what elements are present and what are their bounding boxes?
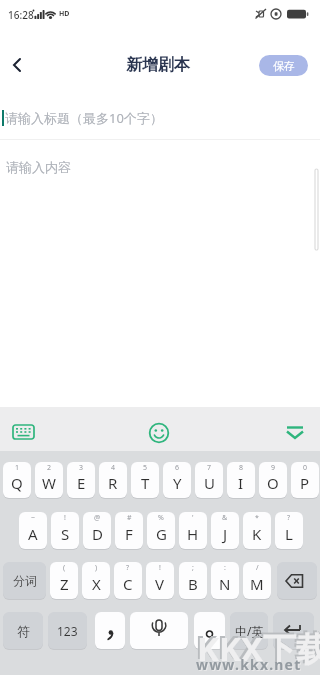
staticText: 0 bbox=[303, 463, 308, 473]
button[interactable]: # bbox=[115, 512, 143, 549]
button[interactable] bbox=[146, 420, 173, 446]
button[interactable] bbox=[4, 52, 30, 78]
staticText: S bbox=[302, 404, 319, 445]
button[interactable]: 7 bbox=[195, 462, 223, 498]
staticText: S bbox=[303, 405, 320, 446]
staticText: / bbox=[256, 563, 259, 573]
button[interactable]: 123 bbox=[48, 612, 87, 649]
button[interactable]: / bbox=[243, 562, 271, 599]
staticText: ) bbox=[95, 563, 98, 573]
staticText: H bbox=[187, 524, 199, 544]
button[interactable] bbox=[277, 562, 317, 599]
button[interactable] bbox=[95, 612, 125, 649]
button[interactable]: 中/英 bbox=[230, 612, 268, 649]
button[interactable]: 4 bbox=[99, 462, 127, 498]
staticText: 分词 bbox=[13, 573, 37, 588]
staticText: U bbox=[204, 473, 215, 493]
staticText: 9 bbox=[271, 463, 276, 473]
staticText: www.kkx.net bbox=[196, 655, 302, 674]
staticText: 2 bbox=[47, 463, 52, 473]
staticText: ~ bbox=[31, 513, 36, 523]
staticText: A bbox=[28, 524, 38, 544]
staticText: ? bbox=[287, 513, 291, 523]
staticText: # bbox=[127, 513, 132, 523]
staticText: 请输入内容 bbox=[6, 159, 71, 175]
button[interactable]: 0 bbox=[291, 462, 319, 498]
button[interactable] bbox=[273, 612, 314, 649]
staticText: B bbox=[188, 574, 198, 594]
staticText: * bbox=[255, 513, 259, 523]
staticText: 16:28 bbox=[8, 8, 34, 22]
staticText: 中/英 bbox=[235, 623, 264, 639]
button[interactable]: 8 bbox=[227, 462, 255, 498]
button[interactable] bbox=[194, 612, 225, 649]
staticText: & bbox=[222, 513, 228, 523]
staticText: ; bbox=[192, 563, 194, 573]
button[interactable]: ~ bbox=[19, 512, 47, 549]
staticText: C bbox=[123, 574, 133, 594]
button[interactable]: ' bbox=[179, 512, 207, 549]
button[interactable]: 6 bbox=[163, 462, 191, 498]
button[interactable]: ? bbox=[275, 512, 303, 549]
button[interactable]: 3 bbox=[67, 462, 95, 498]
staticText: 1 bbox=[15, 463, 20, 473]
button[interactable]: 1 bbox=[3, 462, 31, 498]
staticText: W bbox=[42, 473, 56, 493]
button[interactable] bbox=[130, 612, 188, 649]
staticText: Q bbox=[11, 473, 23, 493]
staticText: ' bbox=[192, 513, 194, 523]
staticText: ( bbox=[63, 563, 66, 573]
staticText: V bbox=[155, 574, 165, 594]
staticText: 4 bbox=[111, 463, 116, 473]
staticText: M bbox=[250, 574, 264, 594]
staticText: 7 bbox=[207, 463, 212, 473]
staticText: D bbox=[92, 524, 103, 544]
button[interactable]: 分词 bbox=[3, 562, 46, 599]
button[interactable]: 符 bbox=[3, 612, 43, 649]
staticText: 8 bbox=[239, 463, 244, 473]
staticText: 请输入标题（最多10个字） bbox=[5, 109, 163, 127]
button[interactable]: ! bbox=[51, 512, 79, 549]
staticText: G bbox=[156, 524, 167, 544]
staticText: KKX下载 bbox=[195, 624, 320, 669]
staticText: K bbox=[252, 524, 262, 544]
staticText: J bbox=[223, 524, 228, 544]
staticText: 3 bbox=[79, 463, 84, 473]
staticText: 新增剧本 bbox=[126, 55, 190, 75]
button[interactable]: * bbox=[243, 512, 271, 549]
staticText: X bbox=[92, 574, 101, 594]
staticText: N bbox=[219, 574, 231, 594]
staticText: % bbox=[158, 513, 164, 523]
button[interactable] bbox=[8, 420, 40, 446]
button[interactable]: ? bbox=[114, 562, 142, 599]
staticText: 5 bbox=[143, 463, 148, 473]
staticText: O bbox=[267, 473, 279, 493]
staticText: E bbox=[77, 473, 86, 493]
staticText: P bbox=[300, 473, 310, 493]
staticText: Z bbox=[60, 574, 69, 594]
staticText: : bbox=[224, 563, 226, 573]
button[interactable]: 保存 bbox=[259, 55, 308, 76]
button[interactable]: @ bbox=[83, 512, 111, 549]
button[interactable]: 9 bbox=[259, 462, 287, 498]
button[interactable]: ( bbox=[50, 562, 78, 599]
button[interactable]: 5 bbox=[131, 462, 159, 498]
button[interactable]: & bbox=[211, 512, 239, 549]
staticText: ! bbox=[159, 563, 161, 573]
staticText: S bbox=[61, 524, 70, 544]
button[interactable]: ! bbox=[146, 562, 174, 599]
staticText: ? bbox=[126, 563, 130, 573]
staticText: 123 bbox=[57, 623, 78, 639]
staticText: HD bbox=[59, 9, 70, 19]
staticText: 保存 bbox=[273, 59, 295, 73]
button[interactable] bbox=[281, 418, 309, 446]
button[interactable]: 2 bbox=[35, 462, 63, 498]
button[interactable]: ) bbox=[82, 562, 110, 599]
button[interactable]: : bbox=[211, 562, 239, 599]
staticText: F bbox=[125, 524, 133, 544]
staticText: ! bbox=[64, 513, 66, 523]
staticText: @ bbox=[94, 513, 101, 523]
button[interactable]: ; bbox=[179, 562, 207, 599]
button[interactable]: % bbox=[147, 512, 175, 549]
staticText: L bbox=[285, 524, 293, 544]
